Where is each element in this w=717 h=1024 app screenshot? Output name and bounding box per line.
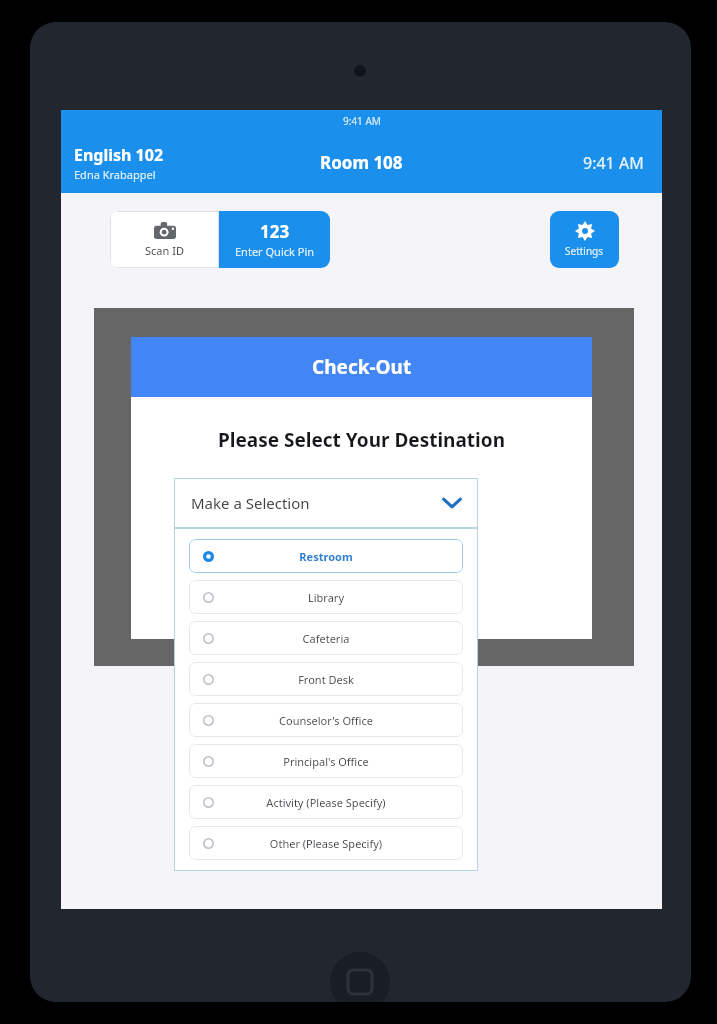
staticText: 9:41 AM	[343, 114, 381, 128]
button[interactable]: Front Desk	[189, 662, 463, 696]
staticText: Edna Krabappel	[74, 167, 156, 182]
staticText: Other (Please Specify)	[189, 836, 463, 851]
staticText: Library	[189, 590, 463, 605]
staticText: Enter Quick Pin	[235, 244, 315, 259]
button[interactable]: Restroom	[189, 539, 463, 573]
staticText: Activity (Please Specify)	[189, 795, 463, 810]
staticText: Please Select Your Destination	[131, 427, 592, 453]
button[interactable]: Cafeteria	[189, 621, 463, 655]
button[interactable]: 123	[219, 211, 330, 268]
staticText: Room 108	[320, 151, 403, 174]
staticText: Settings	[565, 244, 604, 258]
button[interactable]: Activity (Please Specify)	[189, 785, 463, 819]
button[interactable]: Library	[189, 580, 463, 614]
staticText: Scan ID	[145, 243, 184, 258]
staticText: 123	[260, 220, 290, 243]
staticText: Cafeteria	[189, 631, 463, 646]
staticText: Restroom	[189, 549, 463, 564]
button[interactable]: Other (Please Specify)	[189, 826, 463, 860]
staticText: Make a Selection	[191, 493, 310, 513]
staticText: Counselor's Office	[189, 713, 463, 728]
button[interactable]: Make a Selection	[174, 478, 478, 528]
button[interactable]: Principal's Office	[189, 744, 463, 778]
staticText: English 102	[74, 144, 164, 166]
button[interactable]: Settings	[550, 211, 619, 268]
staticText: Check-Out	[312, 354, 412, 380]
staticText: Principal's Office	[189, 754, 463, 769]
staticText: 9:41 AM	[583, 152, 644, 174]
button[interactable]: Counselor's Office	[189, 703, 463, 737]
button[interactable]: Scan ID	[110, 211, 219, 268]
staticText: Front Desk	[189, 672, 463, 687]
